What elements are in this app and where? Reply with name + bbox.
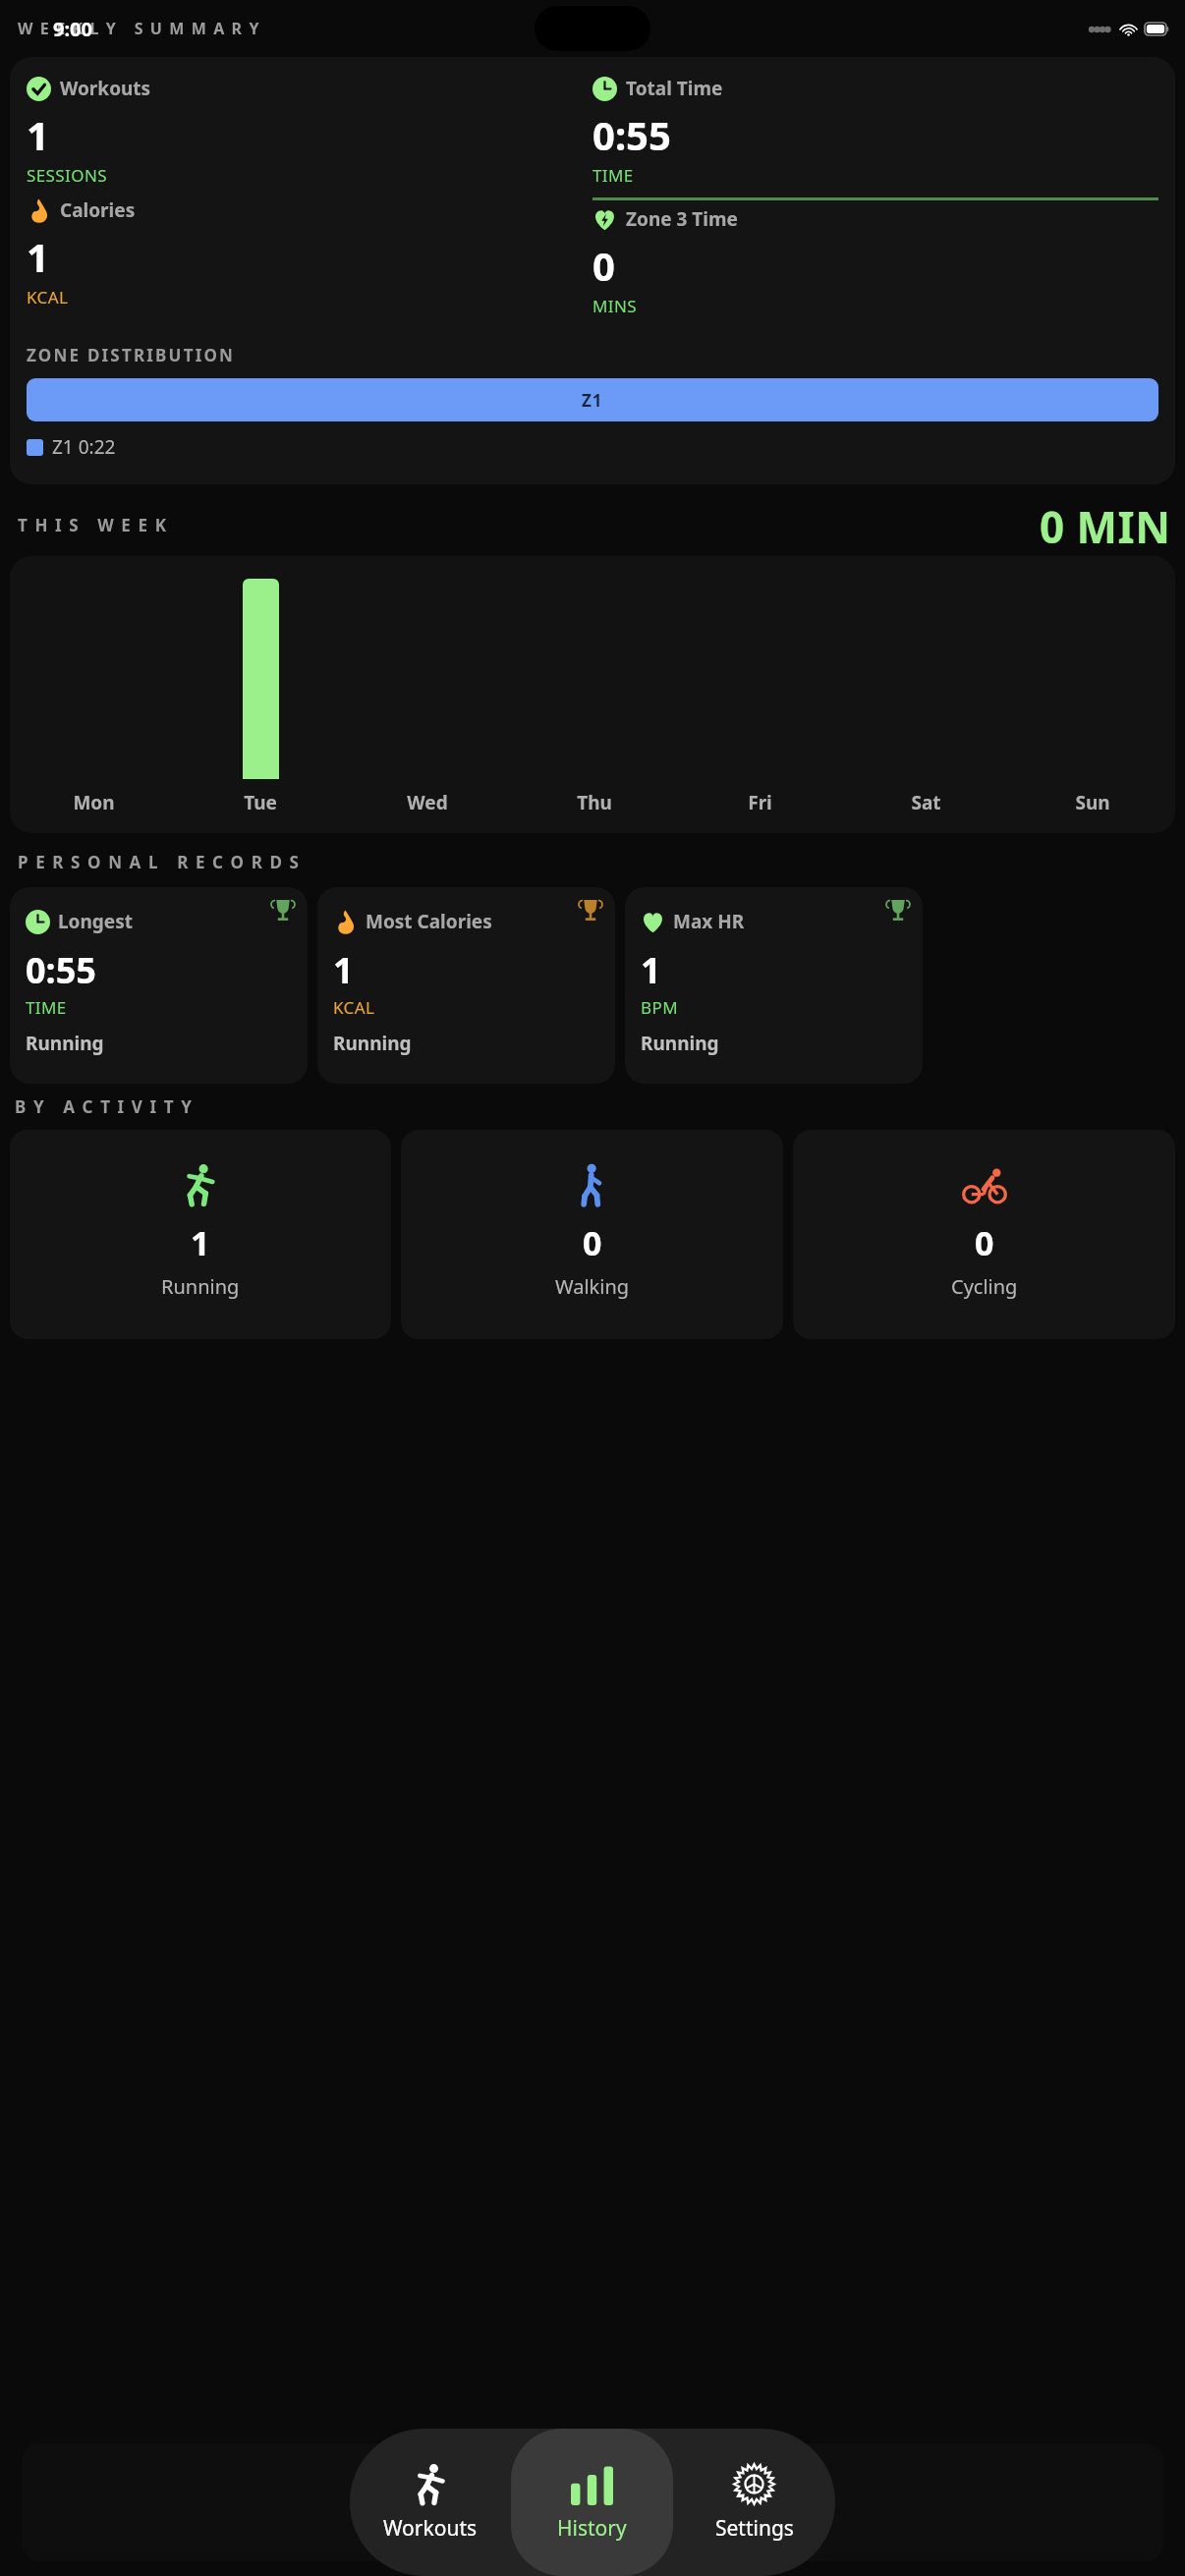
staticText: 1 <box>27 108 49 161</box>
staticText: Wed <box>407 790 448 815</box>
staticText: 0:55 <box>592 108 671 161</box>
staticText: Running <box>641 1031 719 1056</box>
staticText: Zone 3 Time <box>626 206 738 232</box>
staticText: Fri <box>748 790 772 815</box>
staticText: Thu <box>577 790 612 815</box>
staticText: 0 <box>592 239 615 292</box>
staticText: 9:00 <box>53 16 92 42</box>
button[interactable]: History <box>511 2429 673 2576</box>
staticText: Running <box>161 1273 240 1300</box>
button[interactable]: Workouts <box>10 57 1175 484</box>
staticText: W E E K L Y S U M M A R Y <box>18 18 261 39</box>
button[interactable]: Longest <box>10 887 308 1084</box>
staticText: 1 <box>641 946 661 994</box>
staticText: Workouts <box>60 76 151 101</box>
staticText: BPM <box>641 996 678 1019</box>
staticText: SESSIONS <box>27 164 107 187</box>
staticText: 0:55 <box>26 946 96 994</box>
button[interactable]: 1 <box>10 1130 391 1339</box>
staticText: 1 <box>333 946 354 994</box>
staticText: Running <box>26 1031 104 1056</box>
staticText: Longest <box>58 909 133 934</box>
button[interactable]: 0 <box>793 1130 1175 1339</box>
staticText: Workouts <box>383 2514 478 2543</box>
staticText: Walking <box>555 1273 630 1300</box>
staticText: Settings <box>715 2514 794 2543</box>
staticText: T H I S W E E K <box>18 514 168 536</box>
staticText: Z1 0:22 <box>52 434 116 460</box>
staticText: TIME <box>592 164 634 187</box>
button[interactable]: Most Calories <box>317 887 615 1084</box>
staticText: Mon <box>73 790 115 815</box>
staticText: ZONE DISTRIBUTION <box>27 344 236 366</box>
staticText: 1 <box>27 230 49 283</box>
staticText: 0 <box>975 1220 994 1265</box>
staticText: Total Time <box>626 76 723 101</box>
staticText: TIME <box>26 996 67 1019</box>
staticText: Z1 <box>582 389 603 412</box>
staticText: Calories <box>60 197 136 223</box>
staticText: 1 <box>191 1220 210 1265</box>
button[interactable]: Max HR <box>625 887 923 1084</box>
staticText: 0 MIN <box>1040 497 1171 552</box>
staticText: Sun <box>1075 790 1110 815</box>
staticText: Sat <box>911 790 941 815</box>
staticText: KCAL <box>333 996 375 1019</box>
button[interactable]: Settings <box>673 2429 835 2576</box>
button[interactable]: 0 <box>401 1130 783 1339</box>
staticText: Tue <box>244 790 277 815</box>
staticText: Max HR <box>673 909 745 934</box>
staticText: Most Calories <box>366 909 492 934</box>
button[interactable]: Mon <box>10 556 1175 833</box>
staticText: B Y A C T I V I T Y <box>15 1095 194 1118</box>
staticText: Cycling <box>951 1273 1018 1300</box>
staticText: P E R S O N A L R E C O R D S <box>18 851 301 873</box>
staticText: 0 <box>583 1220 602 1265</box>
button[interactable]: Workouts <box>350 2429 511 2576</box>
staticText: Running <box>333 1031 412 1056</box>
staticText: History <box>557 2514 627 2543</box>
staticText: MINS <box>592 295 638 317</box>
staticText: KCAL <box>27 286 69 308</box>
